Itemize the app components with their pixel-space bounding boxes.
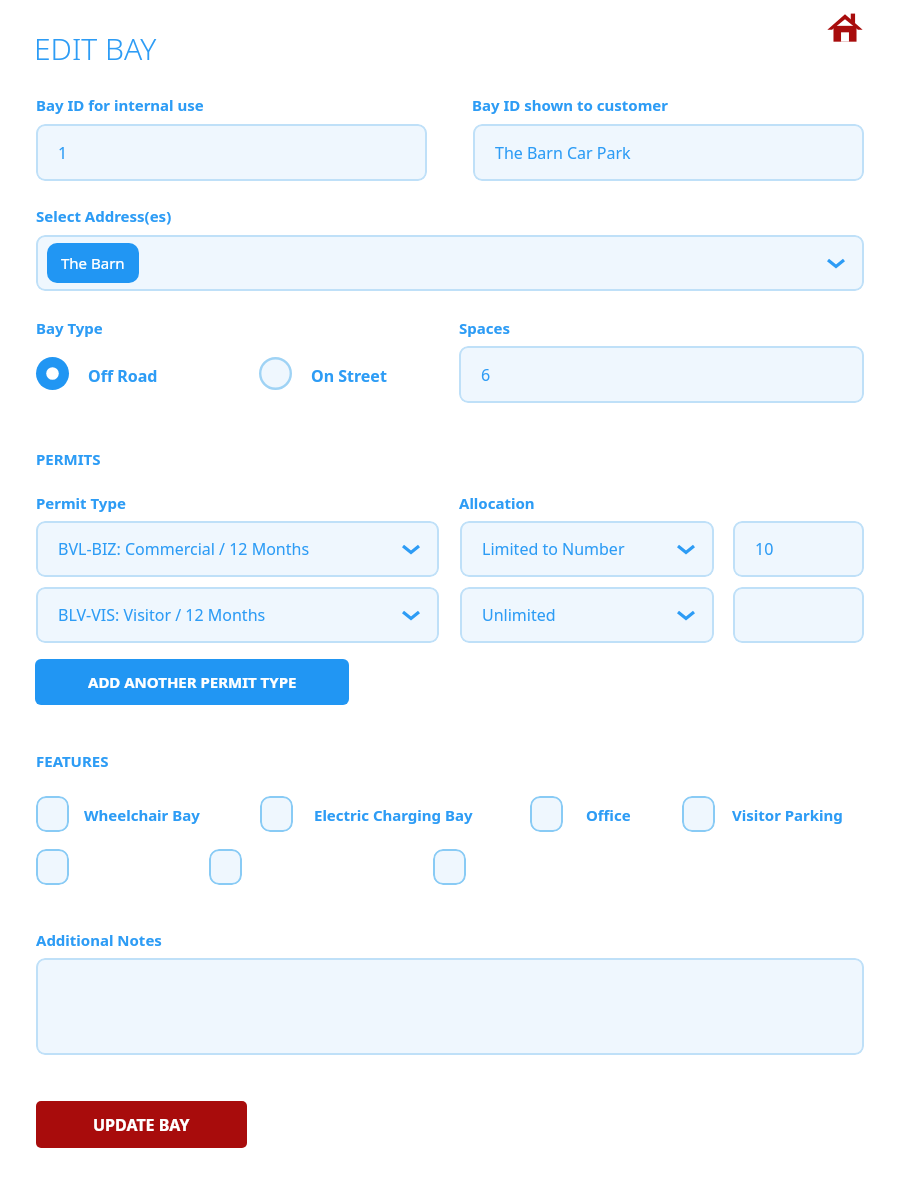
staticText: Bay ID for internal use — [36, 95, 204, 115]
button[interactable]: 10 — [733, 521, 864, 577]
button[interactable]: ADD ANOTHER PERMIT TYPE — [35, 659, 349, 705]
staticText: Electric Charging Bay — [314, 805, 473, 825]
staticText: Additional Notes — [36, 930, 162, 950]
staticText: Wheelchair Bay — [84, 805, 200, 825]
staticText: Office — [586, 805, 631, 825]
button[interactable] — [733, 587, 864, 643]
staticText: Limited to Number — [482, 538, 625, 560]
button[interactable]: Selected option — [36, 357, 69, 390]
staticText: BVL-BIZ: Commercial / 12 Months — [58, 538, 310, 560]
button[interactable] — [36, 958, 864, 1055]
staticText: UPDATE BAY — [93, 1114, 190, 1136]
button[interactable]: Unlimited — [460, 587, 714, 643]
button[interactable]: Feature option 6 — [209, 849, 242, 885]
button[interactable]: BVL-BIZ: Commercial / 12 Months — [36, 521, 439, 577]
staticText: The Barn — [61, 253, 125, 273]
staticText: 10 — [755, 538, 774, 560]
button[interactable]: 6 — [459, 346, 864, 403]
staticText: On Street — [311, 365, 387, 387]
staticText: 6 — [481, 364, 491, 386]
staticText: Select Address(es) — [36, 206, 172, 226]
staticText: Bay Type — [36, 318, 103, 338]
button[interactable]: Office — [530, 796, 563, 832]
button[interactable]: Electric Charging Bay — [260, 796, 293, 832]
staticText: ADD ANOTHER PERMIT TYPE — [88, 672, 297, 692]
staticText: BLV-VIS: Visitor / 12 Months — [58, 604, 266, 626]
button[interactable]: Feature option 5 — [36, 849, 69, 885]
staticText: 1 — [58, 142, 68, 164]
button[interactable]: Wheelchair Bay — [36, 796, 69, 832]
staticText: Visitor Parking — [732, 805, 843, 825]
button[interactable]: Feature option 7 — [433, 849, 466, 885]
staticText: Spaces — [459, 318, 510, 338]
button[interactable]: Home — [823, 6, 867, 50]
staticText: Off Road — [88, 365, 158, 387]
button[interactable]: Unselected option — [259, 357, 292, 390]
staticText: Allocation — [459, 493, 535, 513]
button[interactable]: UPDATE BAY — [36, 1101, 247, 1148]
staticText: EDIT BAY — [34, 28, 157, 69]
button[interactable]: BLV-VIS: Visitor / 12 Months — [36, 587, 439, 643]
button[interactable]: The Barn Car Park — [473, 124, 864, 181]
staticText: Unlimited — [482, 604, 556, 626]
button[interactable]: Visitor Parking — [682, 796, 715, 832]
button[interactable]: The Barn — [36, 235, 864, 291]
staticText: The Barn Car Park — [495, 142, 631, 164]
button[interactable]: The Barn — [47, 243, 139, 283]
button[interactable]: 1 — [36, 124, 427, 181]
staticText: Bay ID shown to customer — [472, 95, 668, 115]
staticText: PERMITS — [36, 449, 101, 469]
button[interactable]: Limited to Number — [460, 521, 714, 577]
staticText: FEATURES — [36, 751, 109, 771]
staticText: Permit Type — [36, 493, 126, 513]
